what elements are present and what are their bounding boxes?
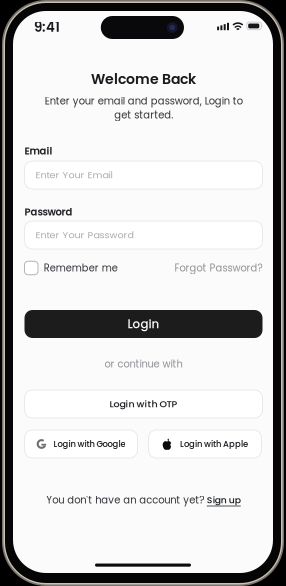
staticText: Login with Google: [53, 438, 125, 450]
staticText: Forgot Password?: [174, 261, 262, 275]
button[interactable]: Login with OTP: [24, 390, 262, 418]
staticText: or continue with: [104, 357, 182, 371]
staticText: 9:41: [34, 18, 60, 36]
staticText: You don't have an account yet?: [46, 493, 204, 507]
button[interactable]: Login with Apple: [148, 430, 261, 458]
staticText: Sign up: [207, 494, 241, 506]
button[interactable]: Remember me: [24, 260, 118, 276]
staticText: Enter Your Password: [35, 228, 133, 242]
staticText: Login: [127, 316, 159, 332]
staticText: Enter Your Email: [35, 168, 112, 182]
staticText: Login with Apple: [180, 438, 248, 450]
staticText: Password: [24, 205, 72, 219]
button[interactable]: Sign up: [207, 494, 241, 506]
staticText: Remember me: [44, 261, 118, 275]
staticText: Welcome Back: [91, 69, 196, 89]
staticText: Login with OTP: [109, 397, 177, 411]
staticText: Email: [24, 144, 52, 158]
button[interactable]: Login: [24, 310, 262, 338]
staticText: Enter your email and password, Login to …: [44, 94, 242, 122]
button[interactable]: Login with Google: [24, 430, 137, 458]
button[interactable]: Forgot Password?: [174, 260, 262, 276]
